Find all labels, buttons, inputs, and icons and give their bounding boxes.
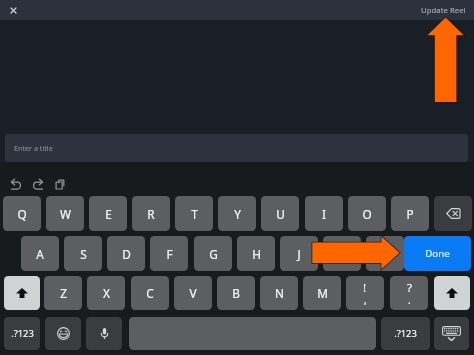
button[interactable]: Paste: [50, 175, 68, 193]
staticText: D: [122, 246, 131, 262]
button[interactable]: J: [280, 236, 318, 271]
staticText: E: [105, 206, 112, 222]
staticText: F: [166, 246, 173, 262]
staticText: ,: [364, 293, 367, 307]
button[interactable]: Close: [4, 1, 22, 19]
button[interactable]: H: [237, 236, 275, 271]
button[interactable]: O: [348, 196, 386, 231]
button[interactable]: W: [46, 196, 84, 231]
button[interactable]: Q: [3, 196, 41, 231]
staticText: W: [60, 206, 71, 222]
button[interactable]: S: [64, 236, 102, 271]
button[interactable]: R: [132, 196, 170, 231]
button[interactable]: U: [261, 196, 299, 231]
staticText: M: [317, 285, 328, 301]
button[interactable]: A: [21, 236, 59, 271]
button[interactable]: M: [303, 276, 341, 310]
staticText: .?123: [11, 327, 34, 340]
button[interactable]: Done: [404, 236, 471, 271]
button[interactable]: K: [323, 236, 361, 271]
button[interactable]: Redo: [29, 175, 47, 193]
staticText: Enter a title: [14, 143, 53, 153]
button[interactable]: Y: [218, 196, 256, 231]
button[interactable]: !: [346, 276, 384, 310]
button[interactable]: Shift: [4, 276, 40, 310]
button[interactable]: P: [391, 196, 429, 231]
button[interactable]: C: [131, 276, 169, 310]
button[interactable]: B: [217, 276, 255, 310]
button[interactable]: Backspace: [434, 196, 472, 231]
staticText: P: [406, 206, 414, 222]
staticText: Z: [60, 285, 67, 301]
staticText: !: [363, 280, 367, 296]
staticText: H: [252, 246, 261, 262]
button[interactable]: Hide keyboard: [434, 317, 469, 350]
button[interactable]: Z: [44, 276, 82, 310]
staticText: V: [189, 285, 197, 301]
button[interactable]: X: [87, 276, 125, 310]
button[interactable]: .?123: [381, 317, 430, 350]
staticText: C: [146, 285, 154, 301]
button[interactable]: F: [150, 236, 188, 271]
button[interactable]: .?123: [4, 317, 40, 350]
button[interactable]: I: [305, 196, 343, 231]
staticText: G: [209, 246, 218, 262]
button[interactable]: L: [366, 236, 404, 271]
staticText: O: [362, 206, 372, 222]
staticText: .: [408, 293, 411, 307]
button[interactable]: E: [89, 196, 127, 231]
button[interactable]: N: [260, 276, 298, 310]
button[interactable]: Emoji: [45, 317, 81, 350]
staticText: Done: [425, 247, 450, 260]
staticText: T: [191, 206, 198, 222]
staticText: Q: [17, 206, 27, 222]
staticText: S: [80, 246, 87, 262]
staticText: R: [147, 206, 155, 222]
button[interactable]: ?: [390, 276, 428, 310]
staticText: A: [36, 246, 44, 262]
staticText: B: [232, 285, 240, 301]
button[interactable]: Voice input: [86, 317, 122, 350]
staticText: ?: [407, 280, 412, 296]
button[interactable]: Shift: [434, 276, 470, 310]
staticText: N: [275, 285, 284, 301]
button[interactable]: V: [174, 276, 212, 310]
staticText: J: [297, 246, 301, 262]
staticText: .?123: [394, 327, 417, 340]
staticText: I: [322, 206, 326, 222]
button[interactable]: Enter a title: [5, 134, 468, 162]
button[interactable]: D: [107, 236, 145, 271]
staticText: Update Reel: [421, 5, 466, 16]
staticText: X: [103, 285, 110, 301]
button[interactable]: Update Reel: [421, 5, 466, 16]
button[interactable]: Undo: [7, 175, 25, 193]
staticText: U: [276, 206, 285, 222]
button[interactable]: T: [175, 196, 213, 231]
staticText: Y: [234, 206, 241, 222]
button[interactable]: G: [194, 236, 232, 271]
